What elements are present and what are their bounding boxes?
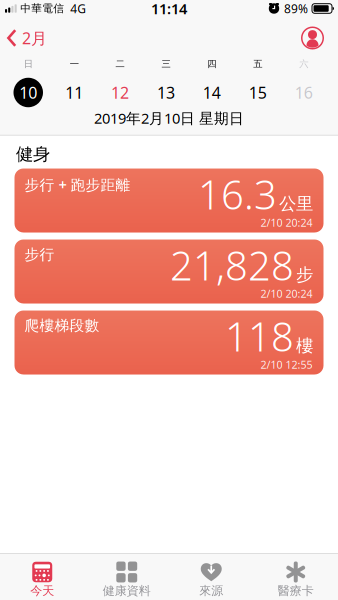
staticText: 4G [70, 0, 86, 16]
staticText: 2/10 20:24 [260, 286, 312, 301]
button[interactable]: 爬樓梯段數 [14, 310, 323, 374]
button[interactable]: 13 [143, 77, 189, 107]
button[interactable]: 健康資料與個人檔案 [301, 26, 338, 49]
button[interactable]: 2月 [0, 27, 47, 49]
staticText: 中華電信 [20, 2, 64, 15]
staticText: 三 [161, 58, 170, 70]
staticText: 89% [284, 0, 308, 16]
staticText: 健康資料 [103, 583, 151, 598]
button[interactable]: 11 [51, 77, 97, 107]
button[interactable]: 今天 [0, 553, 84, 600]
staticText: 2/10 20:24 [260, 215, 312, 230]
staticText: 12 [111, 82, 129, 103]
button[interactable]: 14 [189, 77, 235, 107]
staticText: 步行 + 跑步距離 [24, 175, 130, 194]
staticText: 步行 [24, 246, 54, 264]
button[interactable]: 來源 [169, 553, 253, 600]
staticText: 16 [295, 82, 313, 103]
button[interactable]: 12 [97, 77, 143, 107]
staticText: 14 [203, 82, 221, 103]
staticText: 10 [19, 82, 37, 103]
button[interactable]: 15 [235, 77, 281, 107]
staticText: 118 [225, 309, 294, 363]
staticText: 步 [296, 264, 313, 285]
staticText: 16.3 [198, 167, 277, 221]
staticText: 五 [253, 58, 262, 70]
staticText: 今天 [30, 583, 54, 598]
staticText: 13 [157, 82, 175, 103]
staticText: 11:14 [151, 0, 187, 18]
staticText: 21,828 [170, 238, 294, 292]
staticText: 一 [70, 58, 79, 70]
staticText: 2/10 12:55 [260, 357, 312, 372]
staticText: 15 [249, 82, 267, 103]
staticText: 樓 [296, 335, 313, 356]
staticText: 2月 [22, 27, 47, 49]
button[interactable]: 16 [281, 77, 327, 107]
button[interactable]: 醫療卡 [253, 553, 338, 600]
staticText: 六 [299, 58, 308, 70]
staticText: 醫療卡 [278, 583, 314, 598]
staticText: 二 [115, 58, 124, 70]
button[interactable]: 10 [5, 77, 51, 107]
staticText: 11 [65, 82, 83, 103]
staticText: 四 [207, 58, 216, 70]
button[interactable]: 步行 [14, 239, 323, 303]
staticText: 爬樓梯段數 [24, 317, 99, 335]
button[interactable]: 健康資料 [84, 553, 169, 600]
staticText: 公里 [279, 193, 313, 214]
staticText: 健身 [16, 143, 50, 165]
staticText: 來源 [199, 583, 223, 598]
button[interactable]: 步行 + 跑步距離 [14, 168, 323, 232]
staticText: 2019年2月10日 星期日 [94, 108, 244, 128]
staticText: 日 [24, 58, 33, 70]
